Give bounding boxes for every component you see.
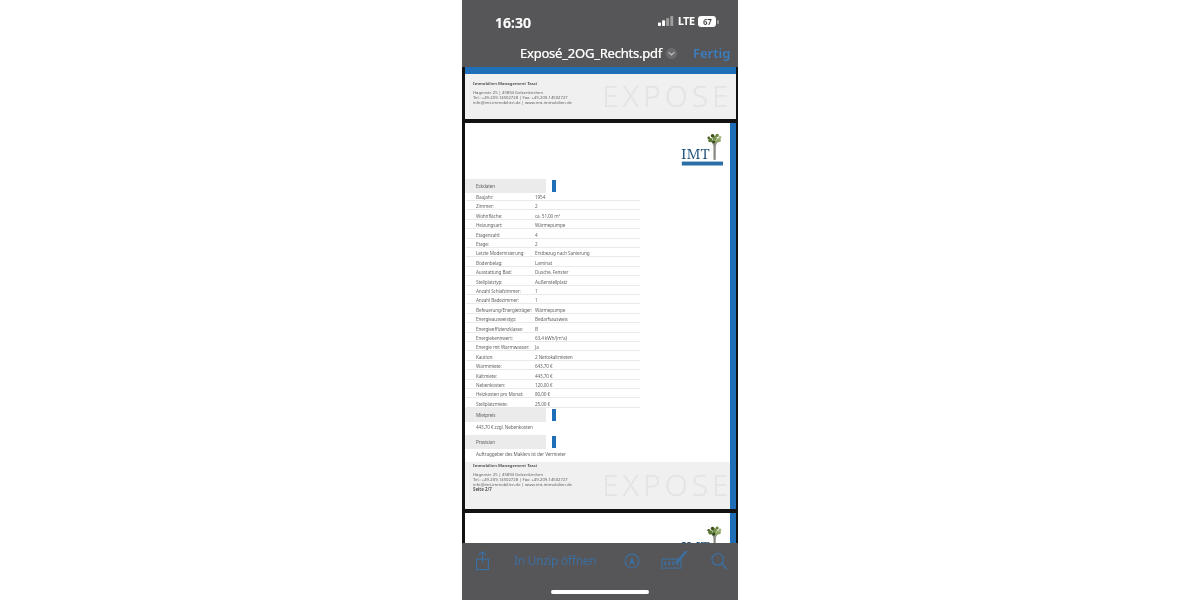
staticText: Heizkosten pro Monat: (476, 391, 524, 397)
staticText: Provision (476, 439, 496, 445)
staticText: Bodenbelag: (476, 260, 503, 266)
button[interactable]: Share (468, 546, 496, 574)
staticText: Exposé_2OG_Rechts.pdf (520, 44, 663, 62)
staticText: Ja (535, 344, 539, 350)
staticText: Bedarfsausweis (535, 316, 568, 322)
staticText: Auftraggeber des Maklers ist der Vermiet… (476, 451, 566, 457)
staticText: 16:30 (495, 13, 531, 32)
staticText: Hagenstr. 25 | 45894 Gelsenkirchen Tel.:… (473, 472, 572, 487)
staticText: Immobilien Management Tasci (473, 463, 538, 469)
staticText: Kaution: (476, 354, 494, 360)
staticText: 1 (535, 297, 538, 303)
staticText: LTE (678, 14, 695, 28)
staticText: 120,00 € (535, 382, 553, 388)
button[interactable]: Markup (661, 546, 689, 574)
staticText: Mietpreis (476, 412, 496, 418)
button[interactable]: Page thumbnails (618, 547, 646, 575)
staticText: Eckdaten (476, 183, 496, 189)
staticText: Etagenzahl: (476, 232, 501, 238)
staticText: Wärmepumpe (535, 222, 566, 228)
staticText: Energieausweistyp: (476, 316, 517, 322)
staticText: Wärmepumpe (535, 307, 566, 313)
staticText: Nebenkosten: (476, 382, 506, 388)
staticText: 4 (535, 232, 538, 238)
staticText: Etage: (476, 241, 489, 247)
staticText: B (535, 326, 538, 332)
staticText: 2 (535, 203, 538, 209)
staticText: Stellplatzmiete: (476, 401, 508, 407)
staticText: Befeuerung/Energieträger: (476, 307, 533, 313)
staticText: In Unzip öffnen (514, 552, 597, 568)
staticText: Anzahl Badezimmer: (476, 297, 519, 303)
staticText: Seite 2/7 (473, 486, 492, 492)
staticText: 443,70 € zzgl. Nebenkosten (476, 424, 533, 430)
button[interactable]: Fertig (687, 40, 737, 66)
staticText: 443,70 € (535, 373, 553, 379)
staticText: 1 (535, 288, 538, 294)
button[interactable]: In Unzip öffnen (510, 548, 601, 572)
staticText: Zimmer: (476, 203, 494, 209)
staticText: Immobilien Management Tasci (473, 81, 538, 87)
staticText: Energie mit Warmwasser: (476, 344, 530, 350)
staticText: 2 (535, 241, 538, 247)
staticText: IMT (681, 143, 710, 163)
staticText: Heizungsart: (476, 222, 503, 228)
button[interactable]: File options (666, 48, 677, 59)
staticText: Wohnfläche: (476, 213, 503, 219)
staticText: Außenstellplatz (535, 279, 568, 285)
staticText: Erstbezug nach Sanierung (535, 250, 590, 256)
staticText: Warmmiete: (476, 363, 502, 369)
staticText: 643,70 € (535, 363, 553, 369)
staticText: Kaltmiete: (476, 373, 497, 379)
staticText: Energiekennwert: (476, 335, 513, 341)
staticText: Laminat (535, 260, 552, 266)
staticText: 2 Nettokaltmieten (535, 354, 573, 360)
staticText: 25,00 € (535, 401, 550, 407)
staticText: Stellplatztyp: (476, 279, 503, 285)
button[interactable]: Search (705, 547, 733, 575)
staticText: Baujahr: (476, 194, 494, 200)
staticText: EXPOSE (602, 464, 733, 505)
staticText: Ausstattung Bad: (476, 269, 512, 275)
staticText: 80,00 € (535, 391, 550, 397)
staticText: 67 (703, 16, 712, 27)
staticText: 1954 (535, 194, 546, 200)
staticText: Anzahl Schlafzimmer: (476, 288, 521, 294)
staticText: Fertig (693, 44, 731, 62)
staticText: IMT (681, 536, 710, 556)
staticText: Energieeffizienzklasse: (476, 326, 524, 332)
staticText: Hagenstr. 25 | 45894 Gelsenkirchen Tel.:… (473, 90, 572, 105)
staticText: ca. 51,00 m² (535, 213, 561, 219)
staticText: 63,4 kWh/(m²a) (535, 335, 567, 341)
staticText: Letzte Modernisierung: (476, 250, 525, 256)
staticText: Dusche, Fenster (535, 269, 569, 275)
staticText: EXPOSE (602, 75, 733, 116)
